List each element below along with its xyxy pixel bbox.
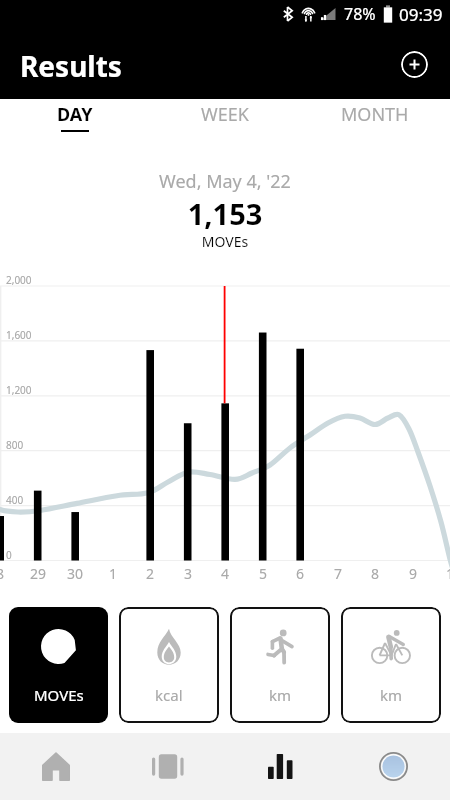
staticText: 6 [281, 564, 319, 583]
button[interactable]: Add [401, 51, 428, 78]
staticText: 8 [356, 564, 394, 583]
button[interactable]: MOVEs [9, 607, 108, 723]
button[interactable]: DAY [0, 99, 150, 139]
staticText: 1,600 [6, 328, 32, 342]
staticText: 09:39 [399, 3, 443, 26]
button[interactable]: kcal [119, 607, 219, 723]
staticText: 9 [394, 564, 432, 583]
button[interactable]: km [341, 607, 441, 723]
staticText: 8 [0, 564, 19, 583]
staticText: km [380, 685, 403, 705]
button[interactable]: Profile [337, 733, 450, 800]
button[interactable]: WEEK [150, 99, 300, 139]
staticText: 0 [6, 548, 12, 562]
staticText: MOVEs [34, 685, 84, 705]
staticText: DAY [57, 102, 93, 127]
staticText: 29 [19, 564, 57, 583]
staticText: 7 [319, 564, 357, 583]
staticText: 800 [6, 438, 24, 452]
button[interactable]: Results [224, 733, 337, 800]
staticText: Results [20, 47, 122, 85]
staticText: 4 [206, 564, 244, 583]
staticText: MOVEs [0, 232, 450, 251]
staticText: 1 [94, 564, 132, 583]
staticText: kcal [155, 685, 183, 705]
staticText: 3 [169, 564, 207, 583]
staticText: 2,000 [6, 273, 32, 287]
staticText: WEEK [201, 102, 249, 127]
button[interactable]: Home [0, 733, 112, 800]
staticText: 5 [244, 564, 282, 583]
staticText: 1,200 [6, 383, 32, 397]
staticText: 400 [6, 493, 24, 507]
staticText: 2 [131, 564, 169, 583]
button[interactable]: Cards [112, 733, 224, 800]
staticText: MONTH [341, 102, 409, 127]
staticText: Wed, May 4, '22 [0, 169, 450, 194]
staticText: 1,153 [0, 194, 450, 233]
button[interactable]: km [230, 607, 330, 723]
button[interactable]: MONTH [300, 99, 450, 139]
staticText: 30 [56, 564, 94, 583]
staticText: km [269, 685, 292, 705]
staticText: 1 [431, 564, 450, 583]
staticText: 78% [344, 3, 376, 25]
